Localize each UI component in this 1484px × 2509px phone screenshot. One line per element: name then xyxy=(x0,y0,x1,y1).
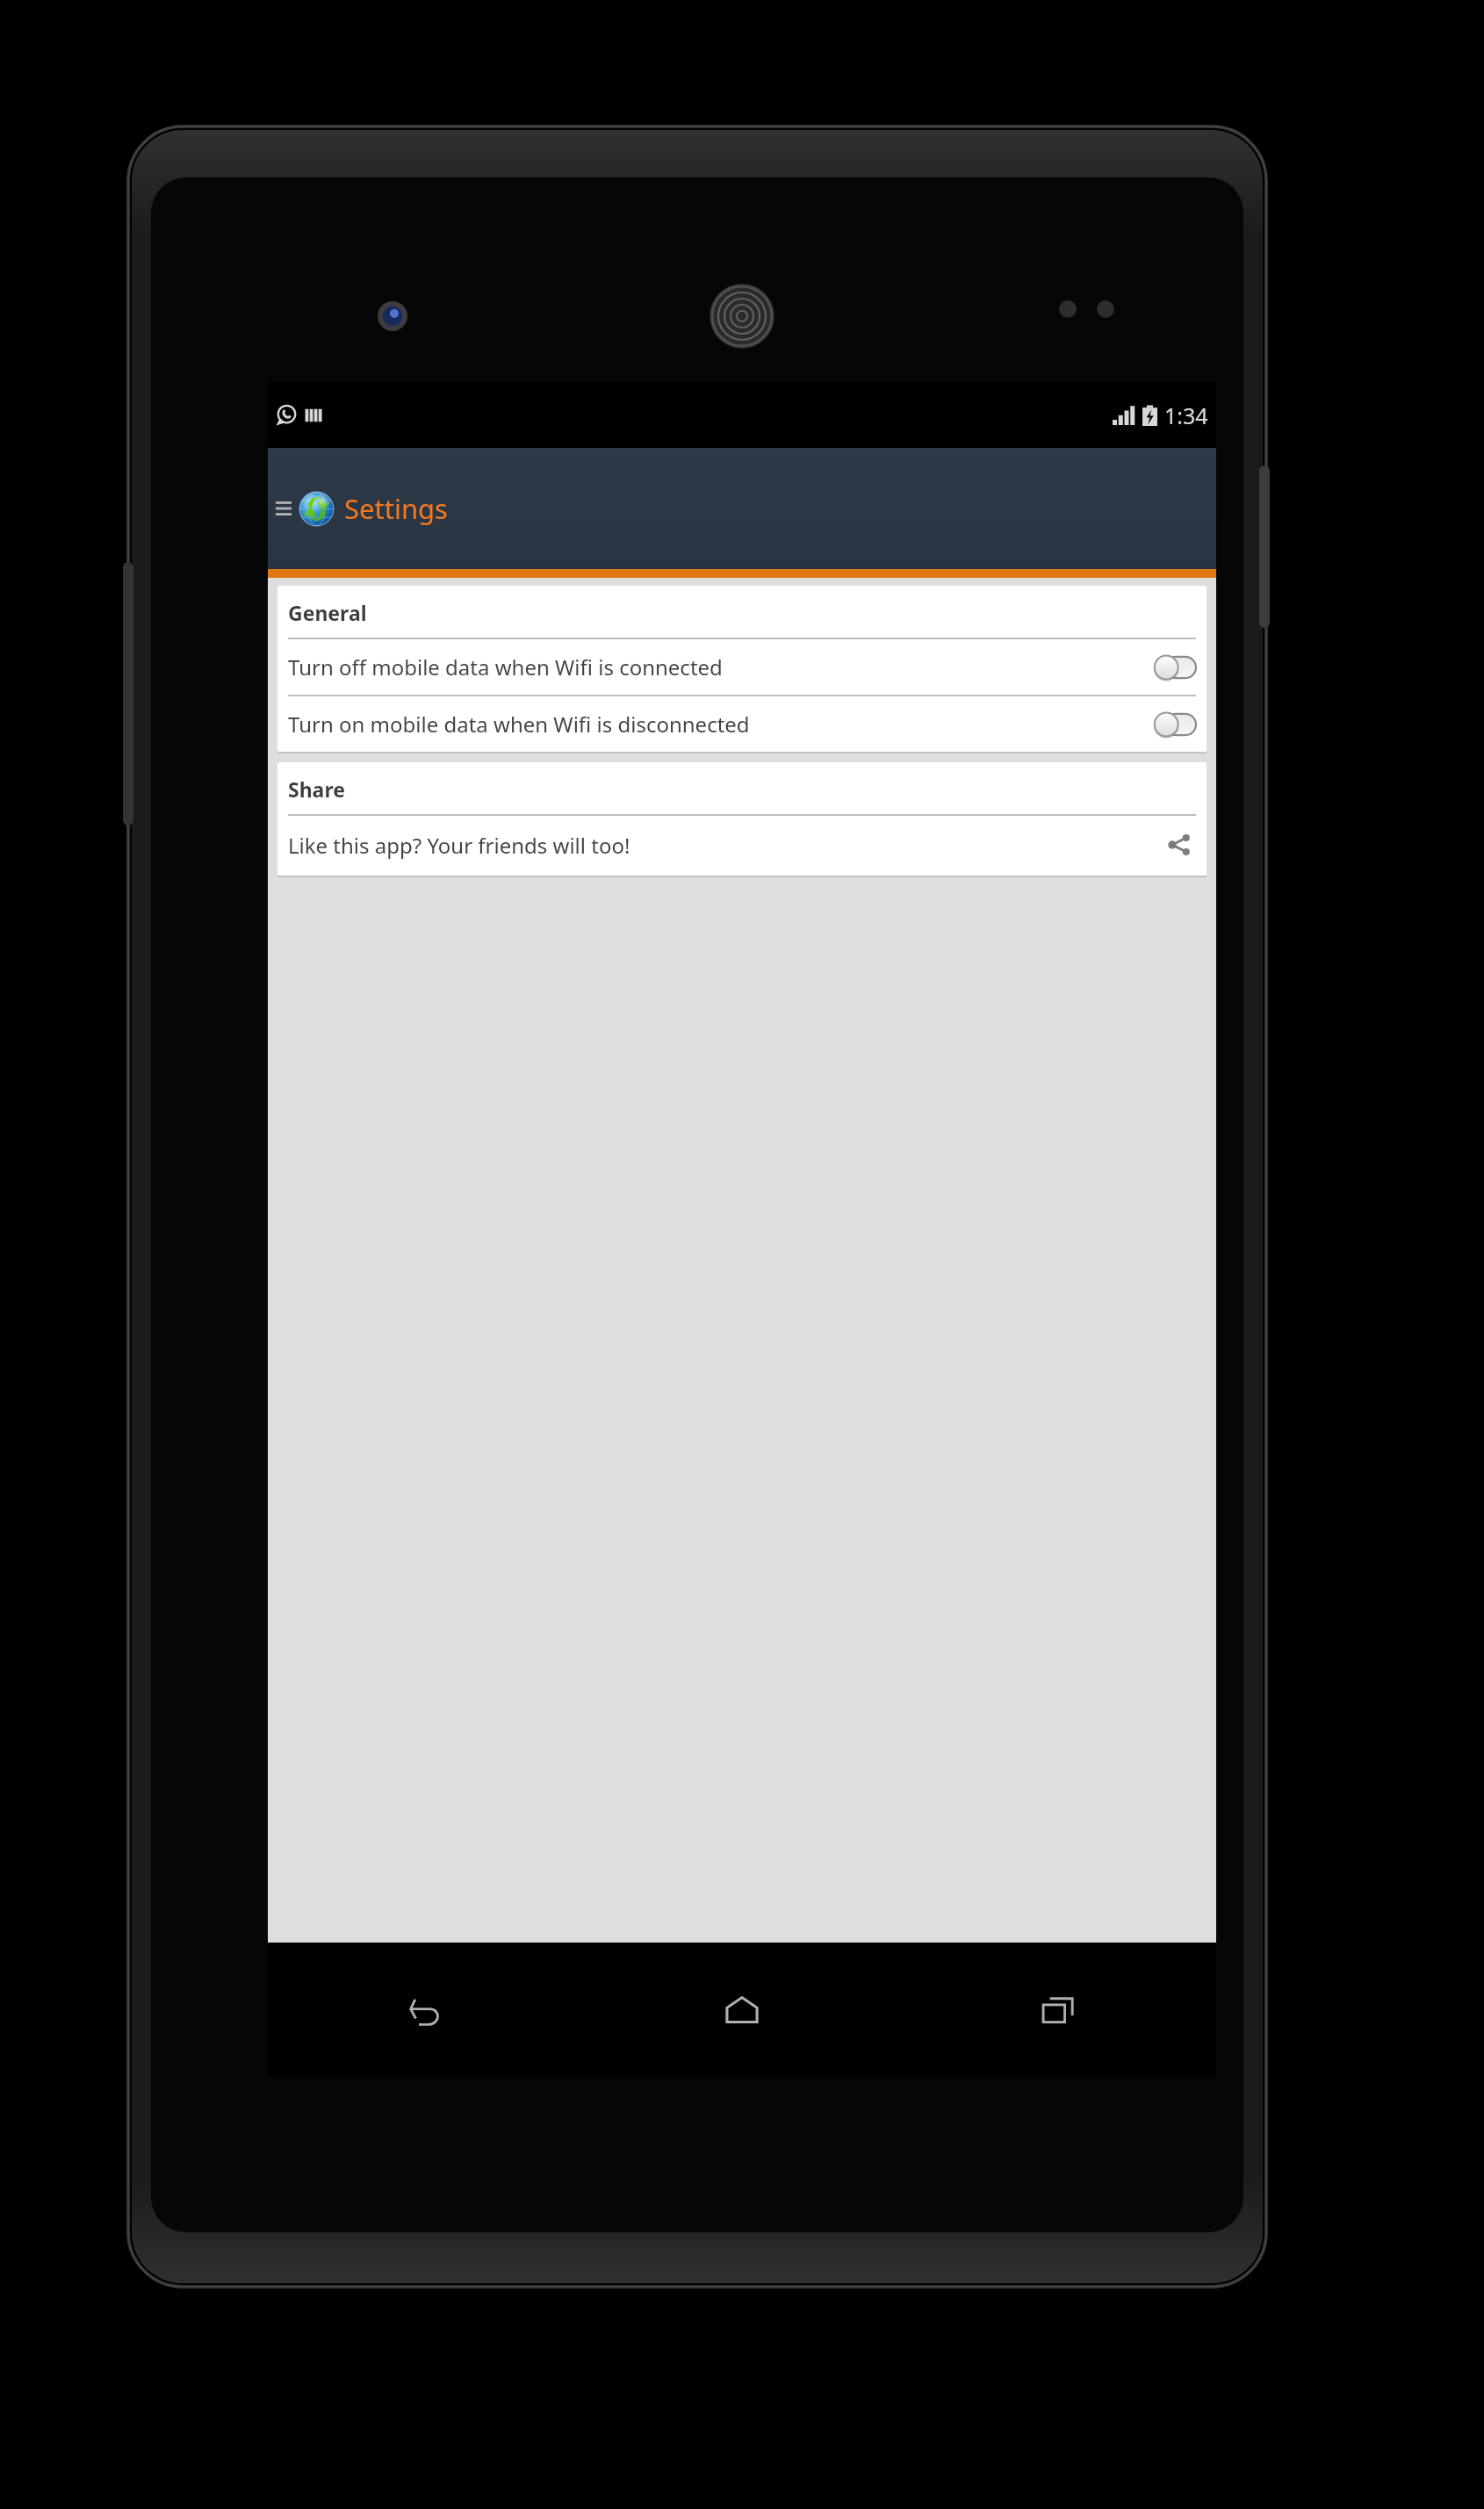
button[interactable]: Share xyxy=(1164,830,1194,860)
staticText: Share xyxy=(288,775,345,803)
staticText: Turn on mobile data when Wifi is disconn… xyxy=(288,710,750,739)
button[interactable]: Like this app? Your friends will too! xyxy=(277,816,1207,876)
button[interactable]: Toggle, off xyxy=(1154,712,1196,737)
button[interactable]: Toggle, off xyxy=(1154,655,1196,680)
staticText: Like this app? Your friends will too! xyxy=(288,831,630,860)
button[interactable]: Recent apps xyxy=(900,1943,1216,2077)
button[interactable]: Open navigation drawer xyxy=(270,448,297,569)
staticText: 1:34 xyxy=(1164,400,1208,430)
button[interactable]: Turn off mobile data when Wifi is connec… xyxy=(277,639,1207,695)
button[interactable]: Back xyxy=(268,1943,584,2077)
staticText: General xyxy=(288,599,367,626)
staticText: Settings xyxy=(344,490,448,527)
button[interactable]: Turn on mobile data when Wifi is disconn… xyxy=(277,696,1207,752)
button[interactable]: Home xyxy=(584,1943,900,2077)
staticText: Turn off mobile data when Wifi is connec… xyxy=(288,652,723,681)
